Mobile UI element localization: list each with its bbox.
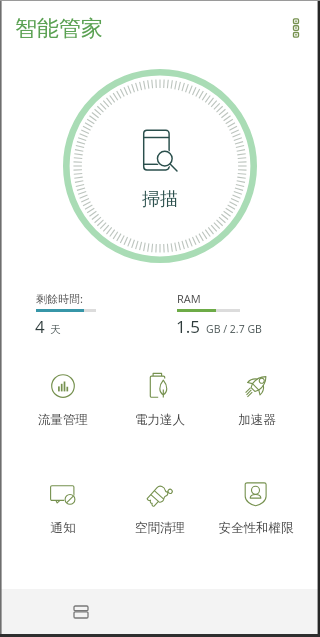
button[interactable]: [209, 369, 305, 432]
button[interactable]: [112, 479, 208, 539]
staticText: 電力達人: [112, 412, 208, 428]
button[interactable]: More options: [279, 10, 312, 43]
staticText: GB / 2.7 GB: [206, 322, 262, 336]
staticText: 4: [35, 315, 45, 338]
staticText: 剩餘時間:: [36, 291, 83, 306]
staticText: 智能管家: [15, 15, 103, 43]
staticText: 加速器: [209, 412, 305, 428]
staticText: 通知: [15, 520, 111, 536]
button[interactable]: [208, 479, 304, 539]
staticText: 安全性和權限: [208, 520, 304, 536]
button[interactable]: [15, 479, 111, 539]
button[interactable]: Recents: [61, 592, 101, 632]
button[interactable]: [112, 369, 208, 432]
staticText: 天: [50, 323, 61, 336]
staticText: 掃描: [142, 188, 178, 211]
staticText: 流量管理: [15, 412, 111, 428]
staticText: 1.5: [176, 315, 201, 338]
staticText: 空間清理: [112, 520, 208, 536]
staticText: RAM: [177, 291, 201, 306]
button[interactable]: [15, 369, 111, 432]
